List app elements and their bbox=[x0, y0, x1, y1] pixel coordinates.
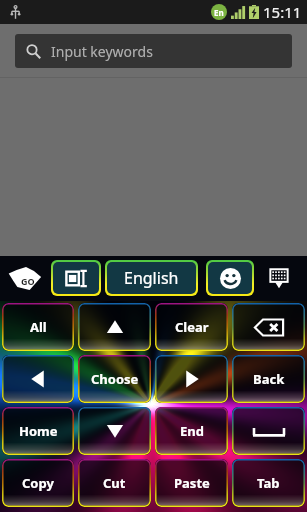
staticText: En bbox=[214, 7, 224, 18]
button[interactable]: Right bbox=[155, 355, 228, 403]
button[interactable]: End bbox=[155, 407, 228, 455]
button[interactable]: Tab bbox=[232, 459, 305, 507]
staticText: 15:11 bbox=[263, 2, 302, 22]
staticText: Clear bbox=[175, 318, 209, 336]
button[interactable]: Back bbox=[232, 355, 305, 403]
button[interactable]: Paste bbox=[155, 459, 228, 507]
staticText: All bbox=[30, 318, 47, 336]
button[interactable]: Input keywords bbox=[15, 34, 292, 68]
button[interactable]: English bbox=[107, 262, 196, 294]
button[interactable]: Down bbox=[78, 407, 151, 455]
button[interactable]: Hide keyboard bbox=[254, 260, 303, 296]
staticText: Tab bbox=[257, 474, 280, 492]
staticText: Input keywords bbox=[51, 42, 153, 61]
button[interactable]: Emoji bbox=[208, 262, 252, 294]
staticText: Copy bbox=[22, 474, 54, 492]
button[interactable]: Copy bbox=[2, 459, 74, 507]
staticText: Choose bbox=[91, 370, 139, 388]
button[interactable]: Clear bbox=[155, 303, 228, 351]
button[interactable]: Choose bbox=[78, 355, 151, 403]
button[interactable]: Up bbox=[78, 303, 151, 351]
staticText: Home bbox=[19, 422, 58, 440]
button[interactable]: Cut bbox=[78, 459, 151, 507]
button[interactable]: Home bbox=[2, 407, 74, 455]
staticText: Cut bbox=[103, 474, 126, 492]
staticText: Back bbox=[253, 370, 285, 388]
staticText: End bbox=[180, 422, 204, 440]
button[interactable]: Input method bbox=[53, 262, 99, 294]
button[interactable]: GO Keyboard menu bbox=[0, 256, 51, 301]
button[interactable]: Left bbox=[2, 355, 74, 403]
button[interactable]: Space bbox=[232, 407, 305, 455]
staticText: English bbox=[124, 267, 179, 289]
button[interactable]: Delete bbox=[232, 303, 305, 351]
staticText: Paste bbox=[174, 474, 210, 492]
staticText: GO bbox=[21, 275, 35, 287]
button[interactable]: All bbox=[2, 303, 74, 351]
